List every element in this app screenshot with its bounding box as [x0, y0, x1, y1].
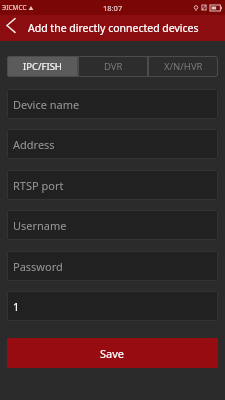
button[interactable]: X/N/HVR: [148, 56, 218, 77]
staticText: DVR: [104, 60, 123, 73]
button[interactable]: Address: [7, 129, 218, 159]
staticText: Save: [100, 346, 125, 361]
staticText: X/N/HVR: [164, 60, 203, 73]
staticText: 18:07: [103, 3, 123, 13]
staticText: ЭICMCC: [2, 3, 27, 12]
staticText: 1: [13, 299, 20, 314]
staticText: Device name: [13, 97, 80, 112]
button[interactable]: Back: [0, 15, 21, 41]
staticText: RTSP port: [13, 178, 64, 193]
button[interactable]: Device name: [7, 89, 218, 119]
staticText: Username: [13, 218, 67, 233]
button[interactable]: Username: [7, 210, 218, 240]
staticText: Add the directly connected devices: [28, 21, 199, 35]
staticText: IPC/FISH: [23, 60, 62, 73]
button[interactable]: Password: [7, 251, 218, 281]
staticText: Address: [13, 137, 55, 152]
button[interactable]: RTSP port: [7, 170, 218, 200]
button[interactable]: DVR: [78, 56, 148, 77]
button[interactable]: Save: [7, 338, 218, 368]
button[interactable]: 1: [7, 291, 218, 321]
button[interactable]: IPC/FISH: [7, 56, 78, 77]
staticText: Password: [13, 259, 63, 274]
